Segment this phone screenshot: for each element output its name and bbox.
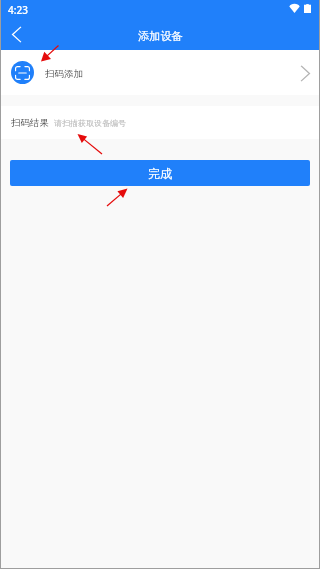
staticText: 请扫描获取设备编号 xyxy=(54,118,126,128)
staticText: 扫码添加 xyxy=(45,68,83,80)
button[interactable]: Back xyxy=(0,20,32,50)
staticText: 完成 xyxy=(148,166,172,181)
button[interactable]: 完成 xyxy=(10,160,310,186)
staticText: 添加设备 xyxy=(138,29,183,43)
button[interactable]: 扫码添加 xyxy=(0,50,320,95)
staticText: 4:23 xyxy=(8,3,28,17)
staticText: 扫码结果 xyxy=(11,117,49,129)
